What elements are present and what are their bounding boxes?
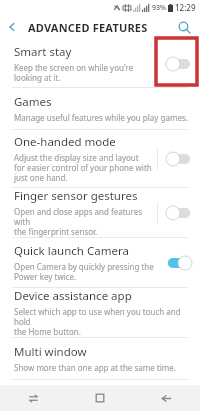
staticText: Finger sensor gestures (14, 188, 138, 204)
staticText: Multi window (14, 344, 87, 360)
staticText: ADVANCED FEATURES (28, 20, 148, 35)
button[interactable]: Finger sensor gestures toggle (158, 188, 200, 237)
button[interactable]: Finger sensor gestures (0, 188, 200, 237)
staticText: Adjust the display size and layout for e… (14, 152, 152, 183)
staticText: One-handed mode (14, 134, 116, 150)
button[interactable]: One-handed mode toggle (158, 130, 200, 187)
button[interactable]: Quick launch Camera toggle (158, 238, 200, 287)
button[interactable]: Search (172, 15, 196, 39)
button[interactable]: Quick launch Camera (0, 238, 200, 287)
button[interactable]: Device assistance app (0, 288, 200, 337)
button[interactable]: Back (133, 385, 200, 411)
button[interactable]: Smart stay toggle (158, 40, 200, 87)
staticText: Open Camera by quickly pressing the Powe… (14, 261, 154, 282)
button[interactable]: Recents (0, 385, 66, 411)
staticText: Select which app to use when you touch a… (14, 306, 192, 337)
staticText: Games (14, 94, 52, 110)
staticText: Manage useful features while you play ga… (14, 112, 188, 123)
staticText: Device assistance app (14, 288, 132, 304)
button[interactable]: Smart stay (0, 40, 200, 87)
button[interactable]: Back (0, 15, 24, 39)
staticText: Open and close apps and features with th… (14, 206, 157, 237)
button[interactable]: One-handed mode (0, 130, 200, 187)
button[interactable]: Games (0, 88, 200, 129)
button[interactable]: Multi window (0, 338, 200, 379)
button[interactable]: Home (66, 385, 133, 411)
staticText: 93% (152, 3, 166, 13)
staticText: 12:29 (175, 2, 196, 13)
staticText: Show more than one app at the same time. (14, 362, 176, 373)
staticText: Quick launch Camera (14, 243, 129, 259)
staticText: Smart stay (14, 44, 72, 60)
staticText: Keep the screen on while you're looking … (14, 62, 134, 83)
